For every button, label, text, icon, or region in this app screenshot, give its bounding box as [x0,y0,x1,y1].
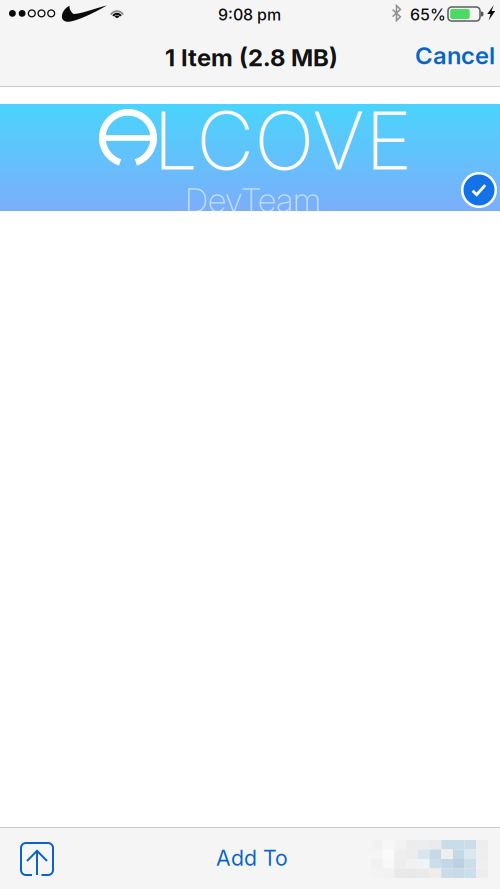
staticText: DevTeam [185,180,321,220]
staticText: 65% [410,5,446,24]
button[interactable]: LCOVE [0,104,500,211]
staticText: 1 Item (2.8 MB) [165,43,338,72]
staticText: Add To [216,845,288,871]
button[interactable]: Add To [198,831,306,885]
staticText: Cancel [415,41,495,70]
staticText: 9:08 pm [218,5,281,24]
staticText: LCOVE [153,92,412,189]
button[interactable]: Cancel [401,27,500,84]
button[interactable]: Share [11,835,63,883]
